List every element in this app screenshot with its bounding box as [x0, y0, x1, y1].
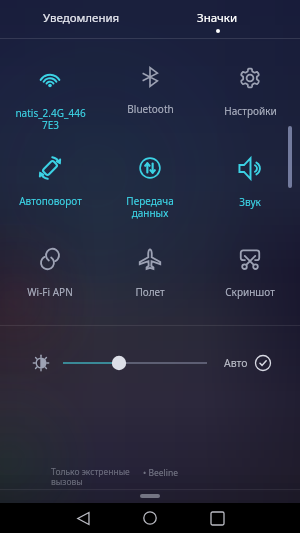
button[interactable]: Автоповорот	[0, 129, 100, 219]
button[interactable]: Значки	[155, 0, 280, 39]
staticText: Скриншот	[225, 285, 275, 299]
button[interactable]: natis_2.4G_446 7E3	[0, 39, 100, 129]
staticText: Уведомления	[43, 10, 120, 26]
button[interactable]: Звук	[200, 129, 300, 219]
button[interactable]: Back	[53, 503, 113, 533]
staticText: Настройки	[224, 104, 277, 118]
button[interactable]: Bluetooth	[100, 39, 200, 129]
staticText: Wi-Fi APN	[27, 285, 73, 299]
staticText: Только экстренные вызовы	[51, 466, 130, 487]
button[interactable]: Уведомления	[13, 0, 149, 39]
button[interactable]: Передача данных	[100, 129, 200, 219]
staticText: Значки	[197, 10, 238, 26]
staticText: Передача данных	[126, 194, 174, 219]
button[interactable]: Home	[120, 503, 180, 533]
staticText: Автоповорот	[19, 194, 82, 208]
button[interactable]: Авто	[224, 355, 271, 371]
staticText: Полет	[135, 285, 165, 299]
button[interactable]: Brightness	[29, 351, 53, 375]
staticText: • Beeline	[143, 467, 178, 479]
button[interactable]: Wi-Fi APN	[0, 220, 100, 310]
staticText: Звук	[239, 195, 261, 209]
button[interactable]: Скриншот	[200, 220, 300, 310]
staticText: natis_2.4G_446 7E3	[15, 106, 86, 129]
staticText: Bluetooth	[127, 102, 174, 116]
button[interactable]: Полет	[100, 220, 200, 310]
button[interactable]: Настройки	[200, 39, 300, 129]
button[interactable]: Recents	[187, 503, 247, 533]
staticText: Авто	[224, 356, 248, 370]
